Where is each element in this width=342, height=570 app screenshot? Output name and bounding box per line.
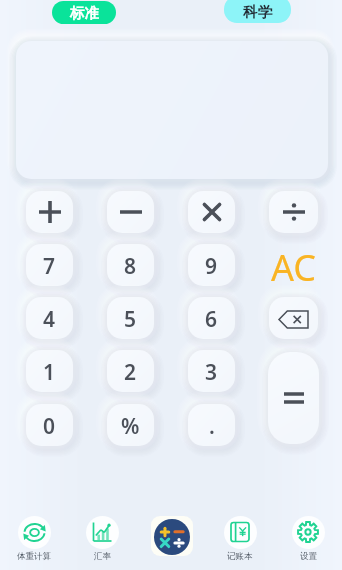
button[interactable]: 0 <box>26 404 73 446</box>
button[interactable]: Minus <box>107 191 154 233</box>
button[interactable]: 5 <box>107 297 154 339</box>
staticText: 4 <box>43 305 56 334</box>
button[interactable]: 1 <box>26 350 73 392</box>
button[interactable]: 7 <box>26 244 73 286</box>
staticText: 3 <box>205 358 218 387</box>
button[interactable]: Equals <box>268 352 319 444</box>
button[interactable]: % <box>107 404 154 446</box>
button[interactable]: 8 <box>107 244 154 286</box>
staticText: 9 <box>205 252 218 281</box>
button[interactable]: 汇率 <box>76 512 128 564</box>
button[interactable]: 3 <box>188 350 235 392</box>
button[interactable]: Divide <box>269 191 318 233</box>
staticText: 科学 <box>243 3 272 21</box>
button[interactable]: 9 <box>188 244 235 286</box>
button[interactable]: 体重计算 <box>8 512 60 564</box>
staticText: 5 <box>124 305 137 334</box>
staticText: 设置 <box>300 551 317 562</box>
staticText: % <box>121 412 140 441</box>
staticText: . <box>209 412 215 441</box>
button[interactable]: 6 <box>188 297 235 339</box>
button[interactable]: Backspace <box>269 297 318 339</box>
staticText: 标准 <box>70 4 99 22</box>
button[interactable]: 4 <box>26 297 73 339</box>
button[interactable]: 记账本 <box>214 512 266 564</box>
staticText: 记账本 <box>227 551 253 562</box>
button[interactable]: . <box>188 404 235 446</box>
button[interactable]: 科学 <box>224 0 291 23</box>
staticText: 7 <box>43 252 56 281</box>
staticText: 体重计算 <box>17 551 51 562</box>
staticText: 1 <box>43 358 56 387</box>
button[interactable]: Plus <box>26 191 73 233</box>
staticText: AC <box>271 243 317 285</box>
button[interactable]: 设置 <box>282 512 334 564</box>
button[interactable]: AC <box>269 243 318 285</box>
staticText: 2 <box>124 358 137 387</box>
button[interactable]: 标准 <box>52 1 116 24</box>
staticText: 8 <box>124 252 137 281</box>
staticText: 0 <box>43 412 56 441</box>
button[interactable]: Multiply <box>188 191 235 233</box>
staticText: 汇率 <box>94 551 111 562</box>
staticText: 6 <box>205 305 218 334</box>
button[interactable]: 2 <box>107 350 154 392</box>
button[interactable]: Calculator <box>154 519 190 555</box>
